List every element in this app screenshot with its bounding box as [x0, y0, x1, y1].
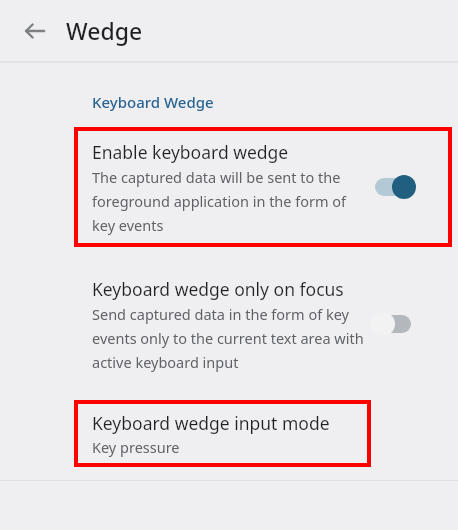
- staticText: Keyboard Wedge: [92, 92, 214, 112]
- button[interactable]: Keyboard wedge only on focus: [0, 249, 458, 399]
- staticText: Keyboard wedge only on focus: [92, 277, 344, 301]
- staticText: Key pressure: [92, 437, 180, 457]
- staticText: Wedge: [66, 15, 143, 46]
- button[interactable]: Switch off: [370, 309, 416, 339]
- staticText: Send captured data in the form of key ev…: [92, 304, 364, 372]
- staticText: Keyboard wedge input mode: [92, 411, 330, 435]
- staticText: The captured data will be sent to the fo…: [92, 167, 364, 235]
- button[interactable]: Enable keyboard wedge: [0, 125, 458, 249]
- button[interactable]: Switch on: [370, 172, 416, 202]
- button[interactable]: Back: [14, 10, 56, 52]
- staticText: Enable keyboard wedge: [92, 140, 289, 164]
- button[interactable]: Keyboard wedge input mode: [0, 399, 458, 469]
